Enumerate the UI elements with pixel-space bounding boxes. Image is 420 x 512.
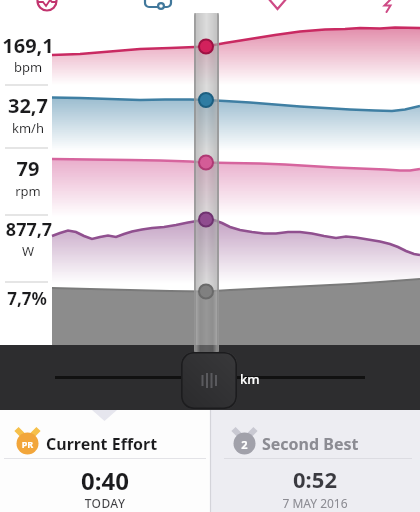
button[interactable] (144, 0, 172, 14)
staticText: 7,7% (0, 287, 54, 310)
button[interactable] (33, 0, 61, 14)
staticText: km/h (0, 119, 56, 137)
staticText: Second Best (262, 433, 359, 455)
staticText: 0:52 (210, 464, 420, 494)
staticText: 169,1 (0, 32, 56, 59)
staticText: W (0, 242, 56, 260)
staticText: 877,7 (0, 217, 58, 242)
staticText: Current Effort (46, 433, 158, 455)
staticText: km (240, 370, 260, 388)
staticText: 7 MAY 2016 (210, 495, 420, 511)
staticText: 0:40 (0, 464, 210, 497)
staticText: bpm (0, 58, 56, 76)
staticText: PR (13, 438, 42, 450)
button[interactable] (263, 0, 291, 14)
staticText: 32,7 (0, 92, 56, 119)
button[interactable] (210, 410, 420, 512)
staticText: 2 (230, 437, 259, 452)
button[interactable] (376, 0, 404, 14)
button[interactable] (0, 410, 210, 512)
staticText: 79 (0, 155, 56, 182)
button[interactable] (181, 352, 237, 409)
staticText: TODAY (0, 495, 210, 511)
staticText: rpm (0, 182, 56, 200)
